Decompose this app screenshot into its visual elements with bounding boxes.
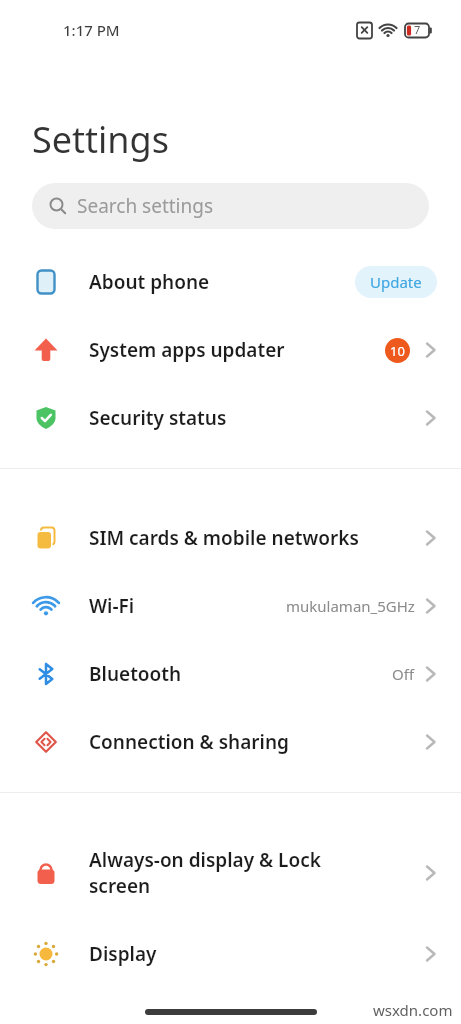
staticText: Wi-Fi <box>89 593 286 619</box>
staticText: Always-on display & Lock screen <box>89 847 425 899</box>
staticText: 1:17 PM <box>63 20 120 40</box>
staticText: Security status <box>89 405 425 431</box>
button[interactable]: Bluetooth <box>0 640 461 708</box>
button[interactable]: Search settings <box>32 183 429 229</box>
staticText: System apps updater <box>89 337 385 363</box>
button[interactable]: SIM cards & mobile networks <box>0 504 461 572</box>
staticText: About phone <box>89 269 355 295</box>
button[interactable]: Wi-Fi <box>0 572 461 640</box>
button[interactable]: Update <box>355 266 437 298</box>
button[interactable]: Security status <box>0 384 461 452</box>
staticText: 10 <box>390 342 405 360</box>
button[interactable]: Display <box>0 920 461 988</box>
staticText: Search settings <box>77 193 214 219</box>
staticText: wsxdn.com <box>373 1000 453 1020</box>
staticText: Display <box>89 941 425 967</box>
staticText: Off <box>392 664 415 684</box>
button[interactable]: About phone <box>0 248 461 316</box>
staticText: Settings <box>32 115 169 164</box>
button[interactable]: Connection & sharing <box>0 708 461 776</box>
staticText: Connection & sharing <box>89 729 425 755</box>
staticText: Bluetooth <box>89 661 392 687</box>
staticText: SIM cards & mobile networks <box>89 525 425 551</box>
staticText: Update <box>370 272 422 292</box>
button[interactable]: Always-on display & Lock screen <box>0 826 461 920</box>
staticText: mukulaman_5GHz <box>286 596 415 616</box>
staticText: 7 <box>414 22 421 37</box>
button[interactable]: System apps updater <box>0 316 461 384</box>
